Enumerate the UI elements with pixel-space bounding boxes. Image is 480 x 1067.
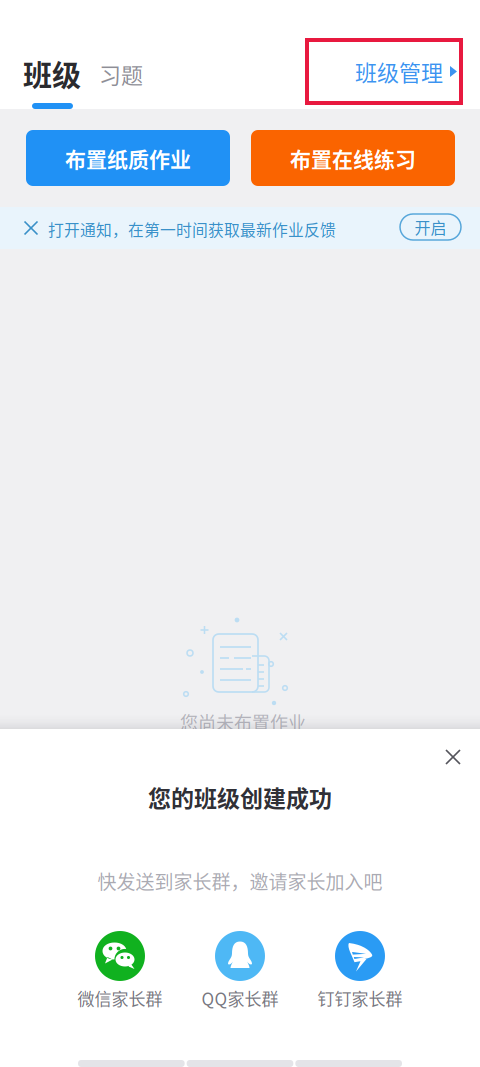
- button[interactable]: 班级: [18, 51, 86, 97]
- button[interactable]: 关闭通知提示: [24, 221, 38, 235]
- staticText: 钉钉家长群: [317, 986, 402, 1010]
- staticText: 您的班级创建成功: [148, 780, 332, 814]
- button[interactable]: 班级管理: [307, 40, 461, 103]
- staticText: 班级: [23, 53, 81, 95]
- button[interactable]: QQ家长群: [185, 931, 295, 1015]
- staticText: 快发送到家长群，邀请家长加入吧: [97, 867, 382, 895]
- staticText: QQ家长群: [201, 986, 278, 1010]
- staticText: 微信家长群: [77, 986, 162, 1010]
- button[interactable]: 布置纸质作业: [26, 130, 230, 186]
- button[interactable]: 关闭: [438, 742, 468, 772]
- button[interactable]: 布置在线练习: [251, 130, 455, 186]
- staticText: 您尚未布置作业: [180, 709, 306, 735]
- button[interactable]: 微信家长群: [65, 931, 175, 1015]
- staticText: 布置纸质作业: [65, 143, 191, 173]
- staticText: 班级管理: [355, 56, 443, 87]
- staticText: 布置在线练习: [290, 143, 416, 173]
- staticText: 打开通知，在第一时间获取最新作业反馈: [48, 218, 336, 240]
- staticText: 开启: [414, 215, 446, 239]
- button[interactable]: 习题: [93, 57, 149, 91]
- button[interactable]: 钉钉家长群: [305, 931, 415, 1015]
- button[interactable]: 开启: [400, 214, 461, 240]
- staticText: 习题: [99, 58, 143, 90]
